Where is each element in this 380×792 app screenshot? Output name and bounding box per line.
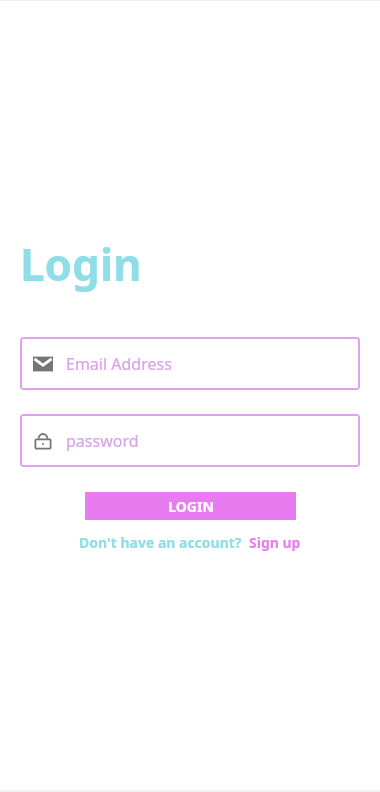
staticText: LOGIN [168,497,214,516]
staticText: password [66,430,139,452]
button[interactable]: Sign up [249,533,301,552]
other: Email [33,354,53,374]
staticText: Login [20,234,142,294]
other: Password [33,431,53,451]
staticText: Sign up [249,533,301,552]
staticText: Email Address [66,353,172,375]
button[interactable]: Email [20,337,360,390]
button[interactable]: Password [20,414,360,467]
button[interactable]: LOGIN [85,492,296,520]
staticText: Don't have an account? [79,533,242,552]
